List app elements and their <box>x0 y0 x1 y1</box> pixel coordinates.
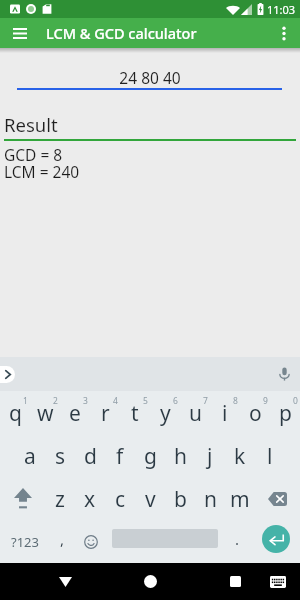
button[interactable]: Switch keyboard <box>260 563 296 600</box>
button[interactable]: Home <box>127 563 173 600</box>
staticText: 2 <box>53 395 58 407</box>
staticText: f <box>116 442 124 471</box>
button[interactable]: 2 <box>30 391 60 434</box>
staticText: d <box>84 442 97 471</box>
button[interactable]: g <box>135 434 165 477</box>
button[interactable]: v <box>135 477 165 520</box>
staticText: k <box>234 442 246 471</box>
staticText: , <box>60 529 65 549</box>
staticText: 0 <box>293 395 298 407</box>
staticText: 1 <box>23 395 28 407</box>
button[interactable]: x <box>75 477 105 520</box>
button[interactable]: f <box>105 434 135 477</box>
button[interactable]: Shift <box>0 477 45 520</box>
staticText: i <box>222 399 228 428</box>
staticText: 11:03 <box>267 2 296 17</box>
button[interactable]: Backspace <box>255 477 300 520</box>
staticText: 4 <box>113 395 118 407</box>
staticText: x <box>84 485 96 514</box>
staticText: z <box>55 485 65 514</box>
button[interactable]: h <box>165 434 195 477</box>
button[interactable]: n <box>195 477 225 520</box>
staticText: 5 <box>143 395 148 407</box>
button[interactable]: s <box>45 434 75 477</box>
button[interactable]: 6 <box>150 391 180 434</box>
button[interactable]: 7 <box>180 391 210 434</box>
staticText: o <box>249 399 262 428</box>
button[interactable]: Emoji <box>76 520 106 563</box>
button[interactable]: , <box>50 520 75 563</box>
button[interactable]: Expand suggestions <box>0 366 15 383</box>
staticText: Result <box>4 112 58 137</box>
button[interactable]: 3 <box>60 391 90 434</box>
button[interactable]: . <box>222 520 252 563</box>
button[interactable]: Voice input <box>274 364 294 384</box>
button[interactable]: Back <box>43 563 88 600</box>
staticText: q <box>9 399 22 428</box>
button[interactable]: m <box>225 477 255 520</box>
staticText: w <box>37 399 54 428</box>
staticText: s <box>55 442 66 471</box>
staticText: g <box>144 442 157 471</box>
button[interactable]: j <box>195 434 225 477</box>
staticText: m <box>230 485 250 514</box>
button[interactable]: 1 <box>0 391 30 434</box>
staticText: j <box>207 442 213 471</box>
staticText: t <box>131 399 139 428</box>
staticText: 9 <box>263 395 268 407</box>
button[interactable]: Navigation menu <box>0 18 40 48</box>
staticText: 6 <box>173 395 178 407</box>
staticText: r <box>101 399 110 428</box>
staticText: e <box>69 399 81 428</box>
staticText: v <box>145 485 156 514</box>
staticText: 8 <box>233 395 238 407</box>
staticText: 24 80 40 <box>0 67 300 88</box>
button[interactable]: 5 <box>120 391 150 434</box>
staticText: 7 <box>203 395 208 407</box>
staticText: l <box>267 442 273 471</box>
button[interactable]: 9 <box>240 391 270 434</box>
staticText: h <box>174 442 187 471</box>
staticText: u <box>189 399 202 428</box>
staticText: LCM & GCD calculator <box>46 23 197 43</box>
button[interactable]: 0 <box>270 391 300 434</box>
staticText: LCM = 240 <box>4 161 80 182</box>
button[interactable]: More options <box>268 18 300 48</box>
button[interactable]: Recent apps <box>212 563 258 600</box>
staticText: . <box>235 529 240 549</box>
button[interactable]: 8 <box>210 391 240 434</box>
button[interactable]: Enter <box>262 525 290 553</box>
button[interactable]: z <box>45 477 75 520</box>
button[interactable]: l <box>255 434 285 477</box>
staticText: GCD = 8 <box>4 144 63 165</box>
staticText: p <box>279 399 292 428</box>
button[interactable]: b <box>165 477 195 520</box>
staticText: y <box>160 399 171 428</box>
button[interactable]: 4 <box>90 391 120 434</box>
button[interactable]: a <box>15 434 45 477</box>
button[interactable]: c <box>105 477 135 520</box>
button[interactable]: k <box>225 434 255 477</box>
staticText: 3 <box>83 395 88 407</box>
button[interactable]: d <box>75 434 105 477</box>
staticText: b <box>174 485 187 514</box>
staticText: c <box>115 485 126 514</box>
staticText: n <box>204 485 217 514</box>
staticText: ?123 <box>11 533 39 551</box>
staticText: a <box>24 442 36 471</box>
button[interactable]: ?123 <box>0 520 50 563</box>
